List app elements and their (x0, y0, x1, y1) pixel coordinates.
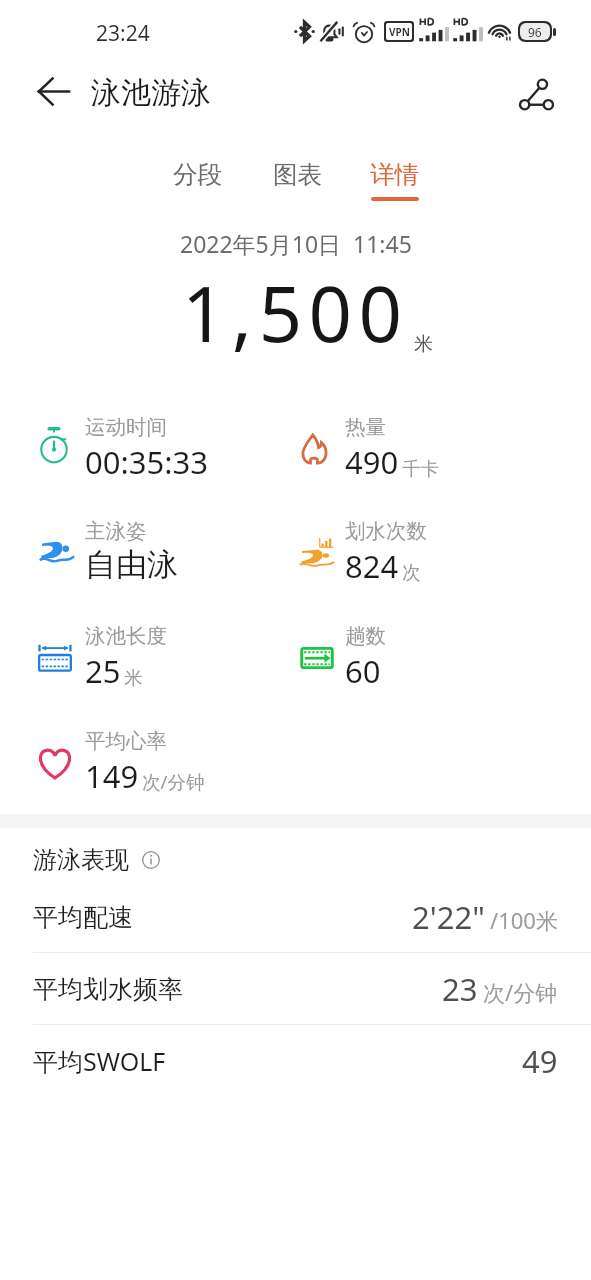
button[interactable]: 详情 (354, 150, 434, 206)
staticText: 泳池长度 (85, 623, 167, 649)
staticText: 趟数 (345, 623, 386, 649)
staticText: 划水次数 (345, 518, 427, 544)
button[interactable]: 图表 (257, 150, 337, 206)
staticText: VPN (389, 25, 410, 39)
button[interactable]: 分段 (157, 150, 237, 206)
staticText: 图表 (273, 159, 322, 190)
staticText: 23:24 (96, 19, 150, 48)
button[interactable]: Info about swimming performance (142, 851, 160, 869)
staticText: 824 (345, 545, 399, 587)
staticText: 00:35:33 (85, 441, 209, 483)
button[interactable]: 平均SWOLF (0, 1025, 591, 1097)
staticText: 平均划水频率 (33, 974, 183, 1005)
staticText: 米 (124, 666, 143, 689)
staticText: 96 (528, 24, 542, 40)
staticText: 49 (522, 1040, 558, 1082)
staticText: 次 (402, 561, 421, 584)
staticText: 千卡 (402, 457, 439, 480)
button[interactable]: 平均划水频率 (0, 953, 591, 1025)
staticText: 平均配速 (33, 902, 133, 933)
staticText: 平均心率 (85, 728, 167, 754)
staticText: 次/分钟 (142, 769, 205, 794)
staticText: 2'22" (412, 896, 485, 938)
staticText: 详情 (370, 159, 419, 190)
button[interactable]: Share (510, 69, 562, 121)
staticText: 米 (414, 332, 433, 356)
staticText: 平均SWOLF (33, 1044, 166, 1078)
staticText: 次/分钟 (483, 977, 558, 1007)
staticText: 分段 (173, 159, 222, 190)
staticText: 泳池游泳 (91, 74, 211, 112)
staticText: 游泳表现 (33, 845, 129, 875)
staticText: 自由泳 (85, 545, 178, 584)
staticText: 25 (85, 650, 121, 692)
staticText: 60 (345, 650, 381, 692)
button[interactable]: 平均配速 (0, 881, 591, 953)
staticText: /100米 (490, 905, 558, 935)
staticText: 2022年5月10日 11:45 (180, 228, 412, 259)
staticText: 149 (85, 755, 139, 797)
staticText: 运动时间 (85, 414, 167, 440)
button[interactable]: Back (27, 65, 79, 117)
staticText: 主泳姿 (85, 518, 147, 544)
staticText: 490 (345, 441, 399, 483)
staticText: 23 (442, 968, 478, 1010)
staticText: 1,500 (182, 261, 409, 365)
staticText: 热量 (345, 414, 386, 440)
